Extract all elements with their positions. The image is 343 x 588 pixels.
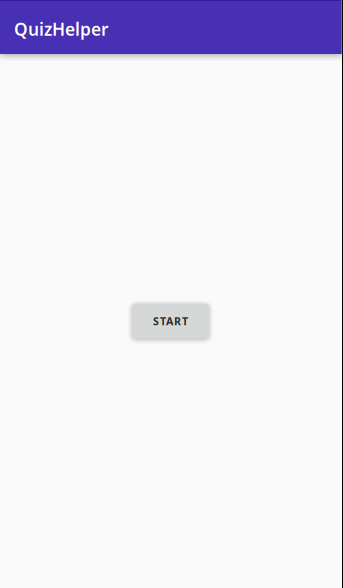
staticText: QuizHelper	[14, 17, 109, 40]
staticText: START	[153, 314, 188, 328]
button[interactable]: START	[132, 303, 209, 338]
